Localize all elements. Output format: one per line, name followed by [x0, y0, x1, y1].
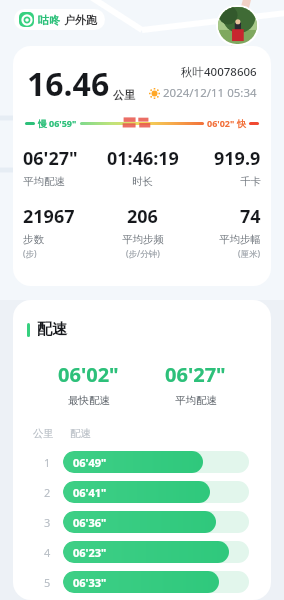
staticText: (步) [23, 248, 37, 260]
staticText: 4 [44, 545, 51, 560]
staticText: 平均步幅 [219, 233, 261, 246]
staticText: 21967 [23, 204, 75, 229]
staticText: 时长 [132, 175, 153, 188]
staticText: 3 [44, 515, 51, 530]
staticText: 06'33" [73, 575, 107, 590]
staticText: 06'27" [165, 361, 226, 388]
staticText: 16.46 [27, 62, 110, 106]
staticText: 配速 [37, 320, 67, 339]
staticText: 01:46:19 [107, 146, 179, 171]
staticText: 06'41" [73, 485, 107, 500]
staticText: 06'23" [73, 545, 107, 560]
staticText: 慢 [38, 118, 47, 129]
staticText: 5 [44, 575, 51, 590]
staticText: 平均配速 [23, 175, 65, 188]
staticText: (步/分钟) [126, 248, 160, 260]
staticText: 74 [240, 204, 261, 229]
staticText: 秋叶40078606 [181, 64, 257, 80]
staticText: 最快配速 [68, 394, 110, 407]
staticText: 06'49" [73, 455, 107, 470]
staticText: 平均配速 [175, 394, 217, 407]
button[interactable]: 4 [13, 540, 271, 564]
button[interactable]: 2 [13, 480, 271, 504]
staticText: 1 [44, 455, 51, 470]
button[interactable]: 1 [13, 450, 271, 474]
staticText: 06'36" [73, 515, 107, 530]
staticText: 户外跑 [64, 13, 97, 27]
staticText: 06'27" [23, 146, 78, 171]
staticText: 千卡 [240, 175, 261, 188]
staticText: 206 [127, 204, 158, 229]
staticText: 平均步频 [122, 233, 164, 246]
button[interactable]: 5 [13, 570, 271, 594]
staticText: 2 [44, 485, 51, 500]
staticText: 919.9 [214, 146, 261, 171]
staticText: 咕咚 [38, 13, 60, 27]
staticText: 公里 [113, 88, 135, 102]
staticText: (厘米) [238, 248, 261, 260]
button[interactable]: 咕咚 [14, 9, 105, 30]
staticText: 快 [237, 118, 246, 129]
staticText: 步数 [23, 233, 44, 246]
staticText: 公里 [33, 427, 54, 440]
staticText: 06'59" [49, 117, 77, 129]
staticText: 2024/12/11 05:34 [163, 85, 257, 101]
staticText: 配速 [70, 427, 91, 440]
staticText: 06'02" [207, 117, 235, 129]
button[interactable]: 3 [13, 510, 271, 534]
button[interactable]: User avatar [218, 7, 257, 44]
staticText: 06'02" [58, 361, 119, 388]
